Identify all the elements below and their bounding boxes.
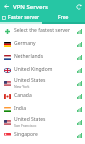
button[interactable]: Singapore xyxy=(0,128,85,141)
staticText: Germany xyxy=(14,40,36,47)
other: Signal strength xyxy=(76,41,82,47)
staticText: San Francisco xyxy=(14,123,37,128)
staticText: New York xyxy=(14,84,30,89)
staticText: Singapore xyxy=(14,131,38,138)
staticText: Canada xyxy=(14,92,32,99)
other: Signal strength xyxy=(76,80,82,86)
button[interactable]: United Kingdom xyxy=(0,63,85,76)
button[interactable]: United States xyxy=(0,115,85,128)
button[interactable]: Refresh xyxy=(73,1,84,12)
staticText: United Kingdom xyxy=(14,66,53,73)
button[interactable]: Netherlands xyxy=(0,50,85,63)
other: Signal strength xyxy=(76,93,82,99)
staticText: Netherlands xyxy=(14,53,44,60)
button[interactable]: United States xyxy=(0,76,85,89)
button[interactable]: Faster server xyxy=(0,13,42,22)
staticText: VPN Servers xyxy=(13,3,48,11)
button[interactable]: Back xyxy=(1,1,12,12)
other: Signal strength xyxy=(76,28,82,34)
button[interactable]: Free xyxy=(42,13,85,22)
staticText: United States xyxy=(14,116,46,123)
other: Signal strength xyxy=(76,119,82,125)
button[interactable]: Select the fastest server xyxy=(0,24,85,37)
staticText: Select the fastest server xyxy=(14,27,70,34)
other: Signal strength xyxy=(76,54,82,60)
button[interactable]: Canada xyxy=(0,89,85,102)
staticText: United States xyxy=(14,77,46,84)
staticText: Faster server xyxy=(8,14,40,21)
other: Signal strength xyxy=(76,106,82,112)
staticText: India xyxy=(14,105,26,112)
button[interactable]: Germany xyxy=(0,37,85,50)
other: Signal strength xyxy=(76,132,82,138)
button[interactable]: India xyxy=(0,102,85,115)
other: Signal strength xyxy=(76,67,82,73)
staticText: Free xyxy=(58,14,69,21)
